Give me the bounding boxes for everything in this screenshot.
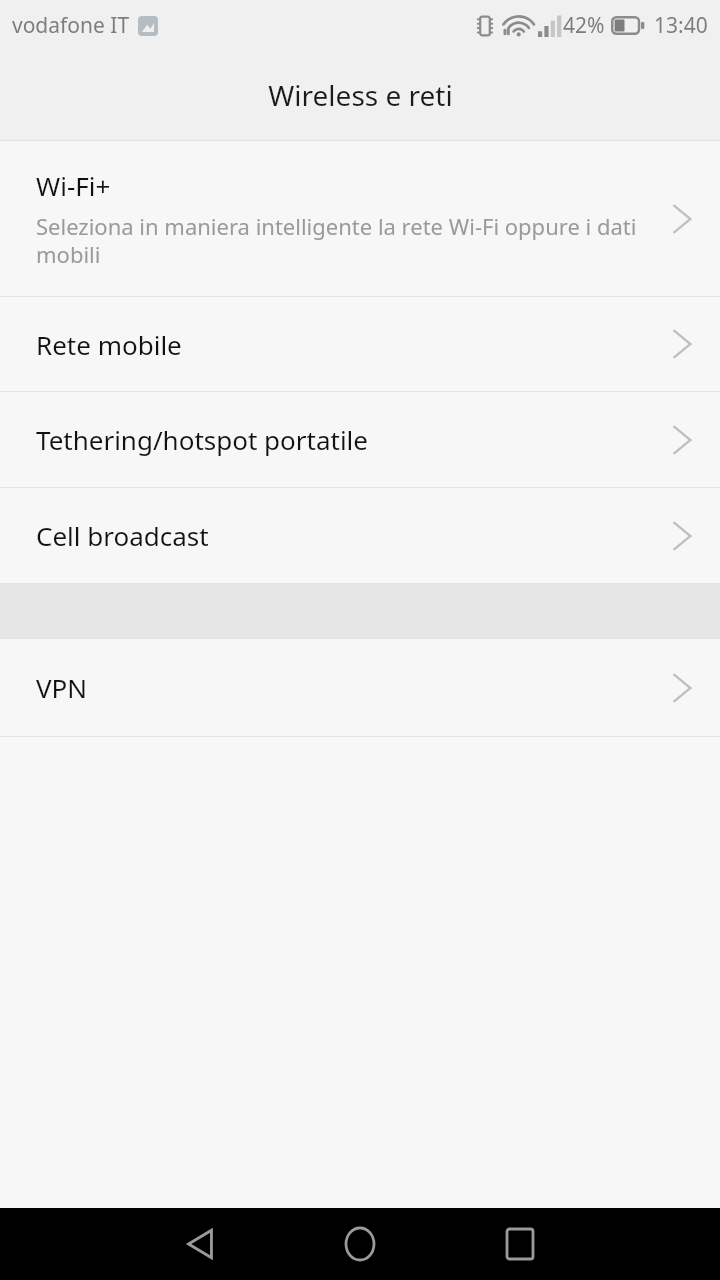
button[interactable]: Rete mobile xyxy=(0,297,720,391)
staticText: VPN xyxy=(36,670,88,705)
staticText: Rete mobile xyxy=(36,327,182,362)
button[interactable]: Wi-Fi+ xyxy=(0,141,720,296)
staticText: Seleziona in maniera intelligente la ret… xyxy=(36,211,662,269)
staticText: Cell broadcast xyxy=(36,518,209,553)
staticText: Tethering/hotspot portatile xyxy=(36,422,368,457)
button[interactable]: VPN xyxy=(0,639,720,736)
staticText: vodafone IT xyxy=(12,11,130,40)
button[interactable]: Back xyxy=(160,1208,240,1280)
button[interactable]: Home xyxy=(320,1208,400,1280)
staticText: 13:40 xyxy=(654,11,708,40)
staticText: Wi-Fi+ xyxy=(36,168,111,203)
button[interactable]: Cell broadcast xyxy=(0,488,720,583)
staticText: Wireless e reti xyxy=(268,76,453,114)
button[interactable]: Recent apps xyxy=(480,1208,560,1280)
staticText: 42% xyxy=(563,11,605,40)
button[interactable]: Tethering/hotspot portatile xyxy=(0,392,720,487)
